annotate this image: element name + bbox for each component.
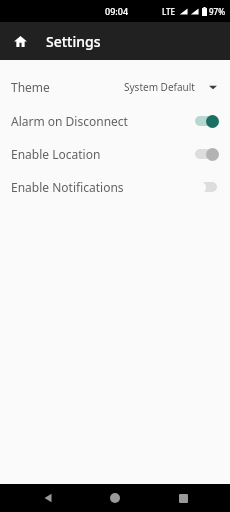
button[interactable]: Recent apps xyxy=(163,484,203,512)
button[interactable]: Toggle xyxy=(193,113,219,129)
button[interactable]: Home xyxy=(6,27,34,55)
button[interactable]: Alarm on Disconnect xyxy=(0,104,230,137)
staticText: Alarm on Disconnect xyxy=(11,113,128,129)
button[interactable]: Enable Location xyxy=(0,137,230,170)
button[interactable]: Toggle xyxy=(193,179,219,195)
button[interactable]: Home xyxy=(95,484,135,512)
staticText: Enable Location xyxy=(11,146,101,162)
staticText: System Default xyxy=(124,80,195,94)
staticText: Settings xyxy=(46,32,101,51)
button[interactable]: Theme xyxy=(0,70,230,104)
staticText: LTE xyxy=(162,6,176,17)
button[interactable]: Back xyxy=(28,484,68,512)
button[interactable]: Enable Notifications xyxy=(0,170,230,203)
staticText: 09:04 xyxy=(105,5,129,17)
staticText: Enable Notifications xyxy=(11,179,124,195)
staticText: Theme xyxy=(11,79,50,95)
button[interactable]: Toggle xyxy=(193,146,219,162)
staticText: 97% xyxy=(209,6,225,17)
